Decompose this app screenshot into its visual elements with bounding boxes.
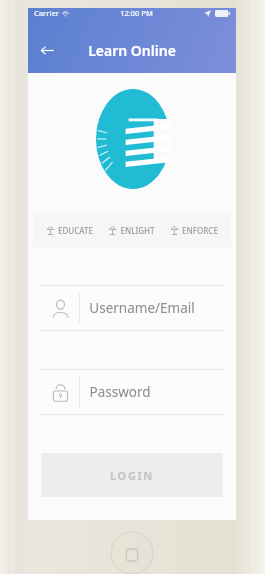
- button[interactable]: ENLIGHT: [108, 225, 155, 236]
- button[interactable]: User: [41, 285, 223, 331]
- staticText: EDUCATE: [58, 225, 93, 236]
- button[interactable]: ENFORCE: [170, 225, 218, 236]
- button[interactable]: Back: [32, 35, 62, 65]
- other: Lock: [51, 383, 70, 402]
- button[interactable]: EDUCATE: [46, 225, 93, 236]
- other: User: [51, 299, 70, 318]
- staticText: ENFORCE: [182, 225, 218, 236]
- staticText: 12:00 PM: [120, 8, 153, 18]
- button[interactable]: Home: [110, 531, 154, 574]
- button[interactable]: LOGIN: [41, 453, 223, 497]
- staticText: Username/Email: [89, 299, 195, 317]
- staticText: Password: [89, 383, 151, 401]
- staticText: ENLIGHT: [120, 225, 155, 236]
- staticText: Learn Online: [88, 41, 176, 60]
- staticText: LOGIN: [110, 468, 154, 483]
- staticText: Carrier: [34, 8, 59, 18]
- button[interactable]: Lock: [41, 369, 223, 415]
